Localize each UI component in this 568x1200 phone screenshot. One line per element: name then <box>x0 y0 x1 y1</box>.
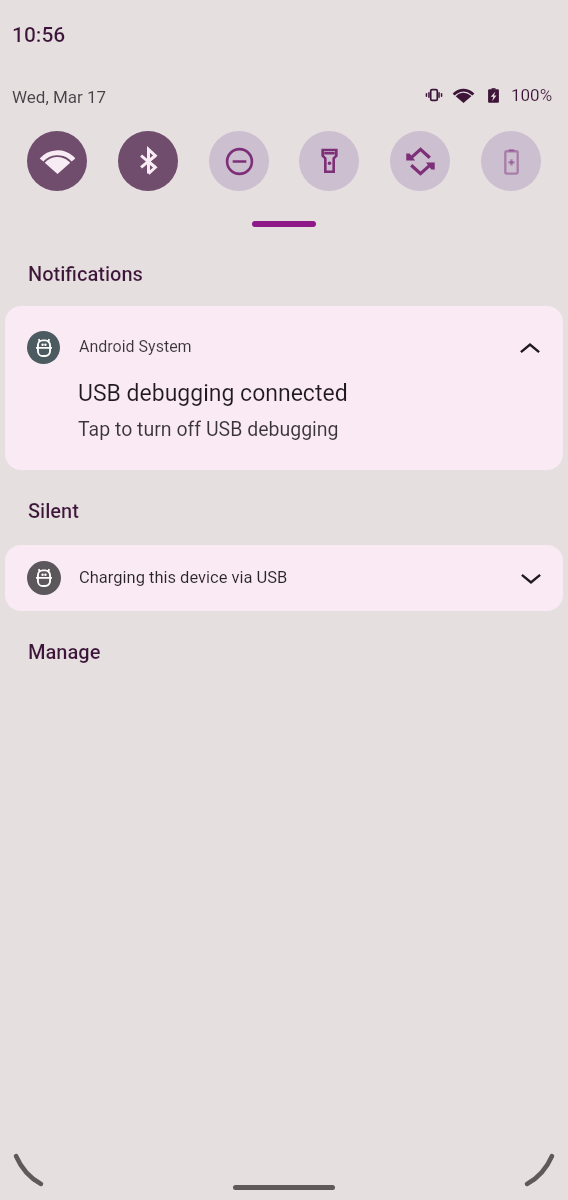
staticText: USB debugging connected <box>78 380 348 407</box>
button[interactable]: Charging this device via USB <box>5 545 563 611</box>
staticText: Manage <box>28 640 101 663</box>
staticText: Wed, Mar 17 <box>12 87 107 107</box>
button[interactable]: Battery Saver <box>481 131 541 191</box>
staticText: Silent <box>28 499 79 522</box>
button[interactable]: Expand quick settings <box>252 221 316 227</box>
staticText: 100% <box>511 85 553 105</box>
button[interactable]: Flashlight <box>299 131 359 191</box>
button[interactable]: Manage <box>28 640 101 663</box>
button[interactable]: Wi-Fi <box>27 131 87 191</box>
staticText: Android System <box>79 337 192 356</box>
staticText: Charging this device via USB <box>79 568 288 587</box>
button[interactable]: Auto-rotate <box>390 131 450 191</box>
staticText: Notifications <box>28 262 143 285</box>
button[interactable]: Do Not Disturb <box>209 131 269 191</box>
staticText: Tap to turn off USB debugging <box>78 418 339 441</box>
staticText: 10:56 <box>12 23 66 48</box>
button[interactable]: Android System <box>5 306 563 470</box>
button[interactable]: Expand notification <box>507 554 555 602</box>
button[interactable]: Bluetooth <box>118 131 178 191</box>
button[interactable]: Collapse notification <box>506 325 554 373</box>
